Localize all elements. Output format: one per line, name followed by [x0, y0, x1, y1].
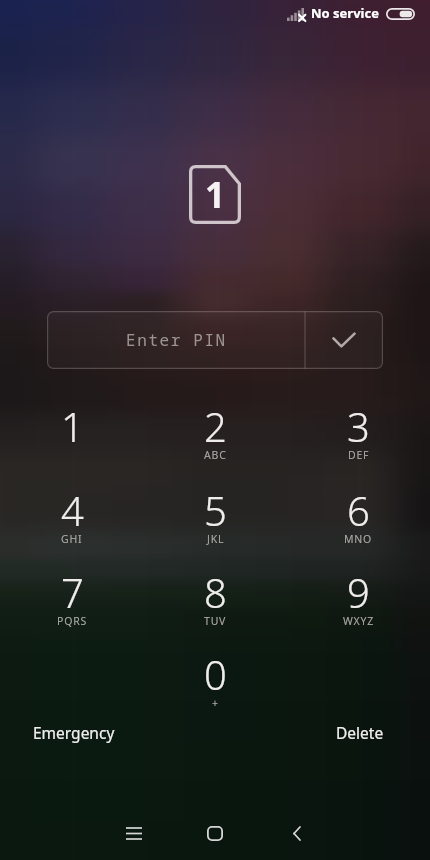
staticText: ABC — [204, 448, 227, 462]
staticText: MNO — [344, 532, 373, 546]
button[interactable]: 0 — [144, 644, 287, 726]
staticText: DEF — [348, 448, 370, 462]
button[interactable]: Back — [262, 805, 332, 860]
button[interactable]: Home — [180, 805, 250, 860]
staticText: 6 — [347, 483, 370, 537]
button[interactable]: Delete — [332, 718, 388, 747]
button[interactable]: 5 — [144, 480, 287, 562]
button[interactable]: 6 — [287, 480, 430, 562]
staticText: 9 — [347, 565, 370, 619]
button[interactable]: Enter PIN — [47, 311, 305, 369]
staticText: Emergency — [33, 722, 115, 743]
button[interactable]: 2 — [144, 396, 287, 480]
button[interactable]: 8 — [144, 562, 287, 644]
staticText: JKL — [207, 532, 225, 546]
staticText: 3 — [347, 399, 370, 453]
staticText: TUV — [204, 614, 227, 628]
staticText: PQRS — [57, 614, 88, 628]
button[interactable]: 9 — [287, 562, 430, 644]
staticText: 2 — [204, 399, 227, 453]
staticText: 8 — [204, 565, 227, 619]
button[interactable]: 7 — [0, 562, 144, 644]
staticText: 5 — [204, 483, 227, 537]
staticText: WXYZ — [343, 614, 375, 628]
staticText: 0 — [204, 647, 227, 701]
button[interactable]: 1 — [0, 396, 144, 480]
button[interactable]: 4 — [0, 480, 144, 562]
staticText: 7 — [61, 565, 84, 619]
staticText: Enter PIN — [126, 329, 227, 351]
staticText: 1 — [61, 399, 84, 453]
staticText: GHI — [61, 532, 83, 546]
button[interactable]: Emergency — [29, 718, 119, 747]
staticText: Delete — [336, 722, 384, 743]
staticText: 1 — [205, 171, 226, 219]
staticText: No service — [311, 4, 379, 22]
staticText: + — [212, 696, 219, 710]
button[interactable]: 3 — [287, 396, 430, 480]
button[interactable]: Confirm PIN — [305, 311, 383, 369]
staticText: 4 — [61, 483, 84, 537]
button[interactable]: Menu — [99, 805, 169, 860]
